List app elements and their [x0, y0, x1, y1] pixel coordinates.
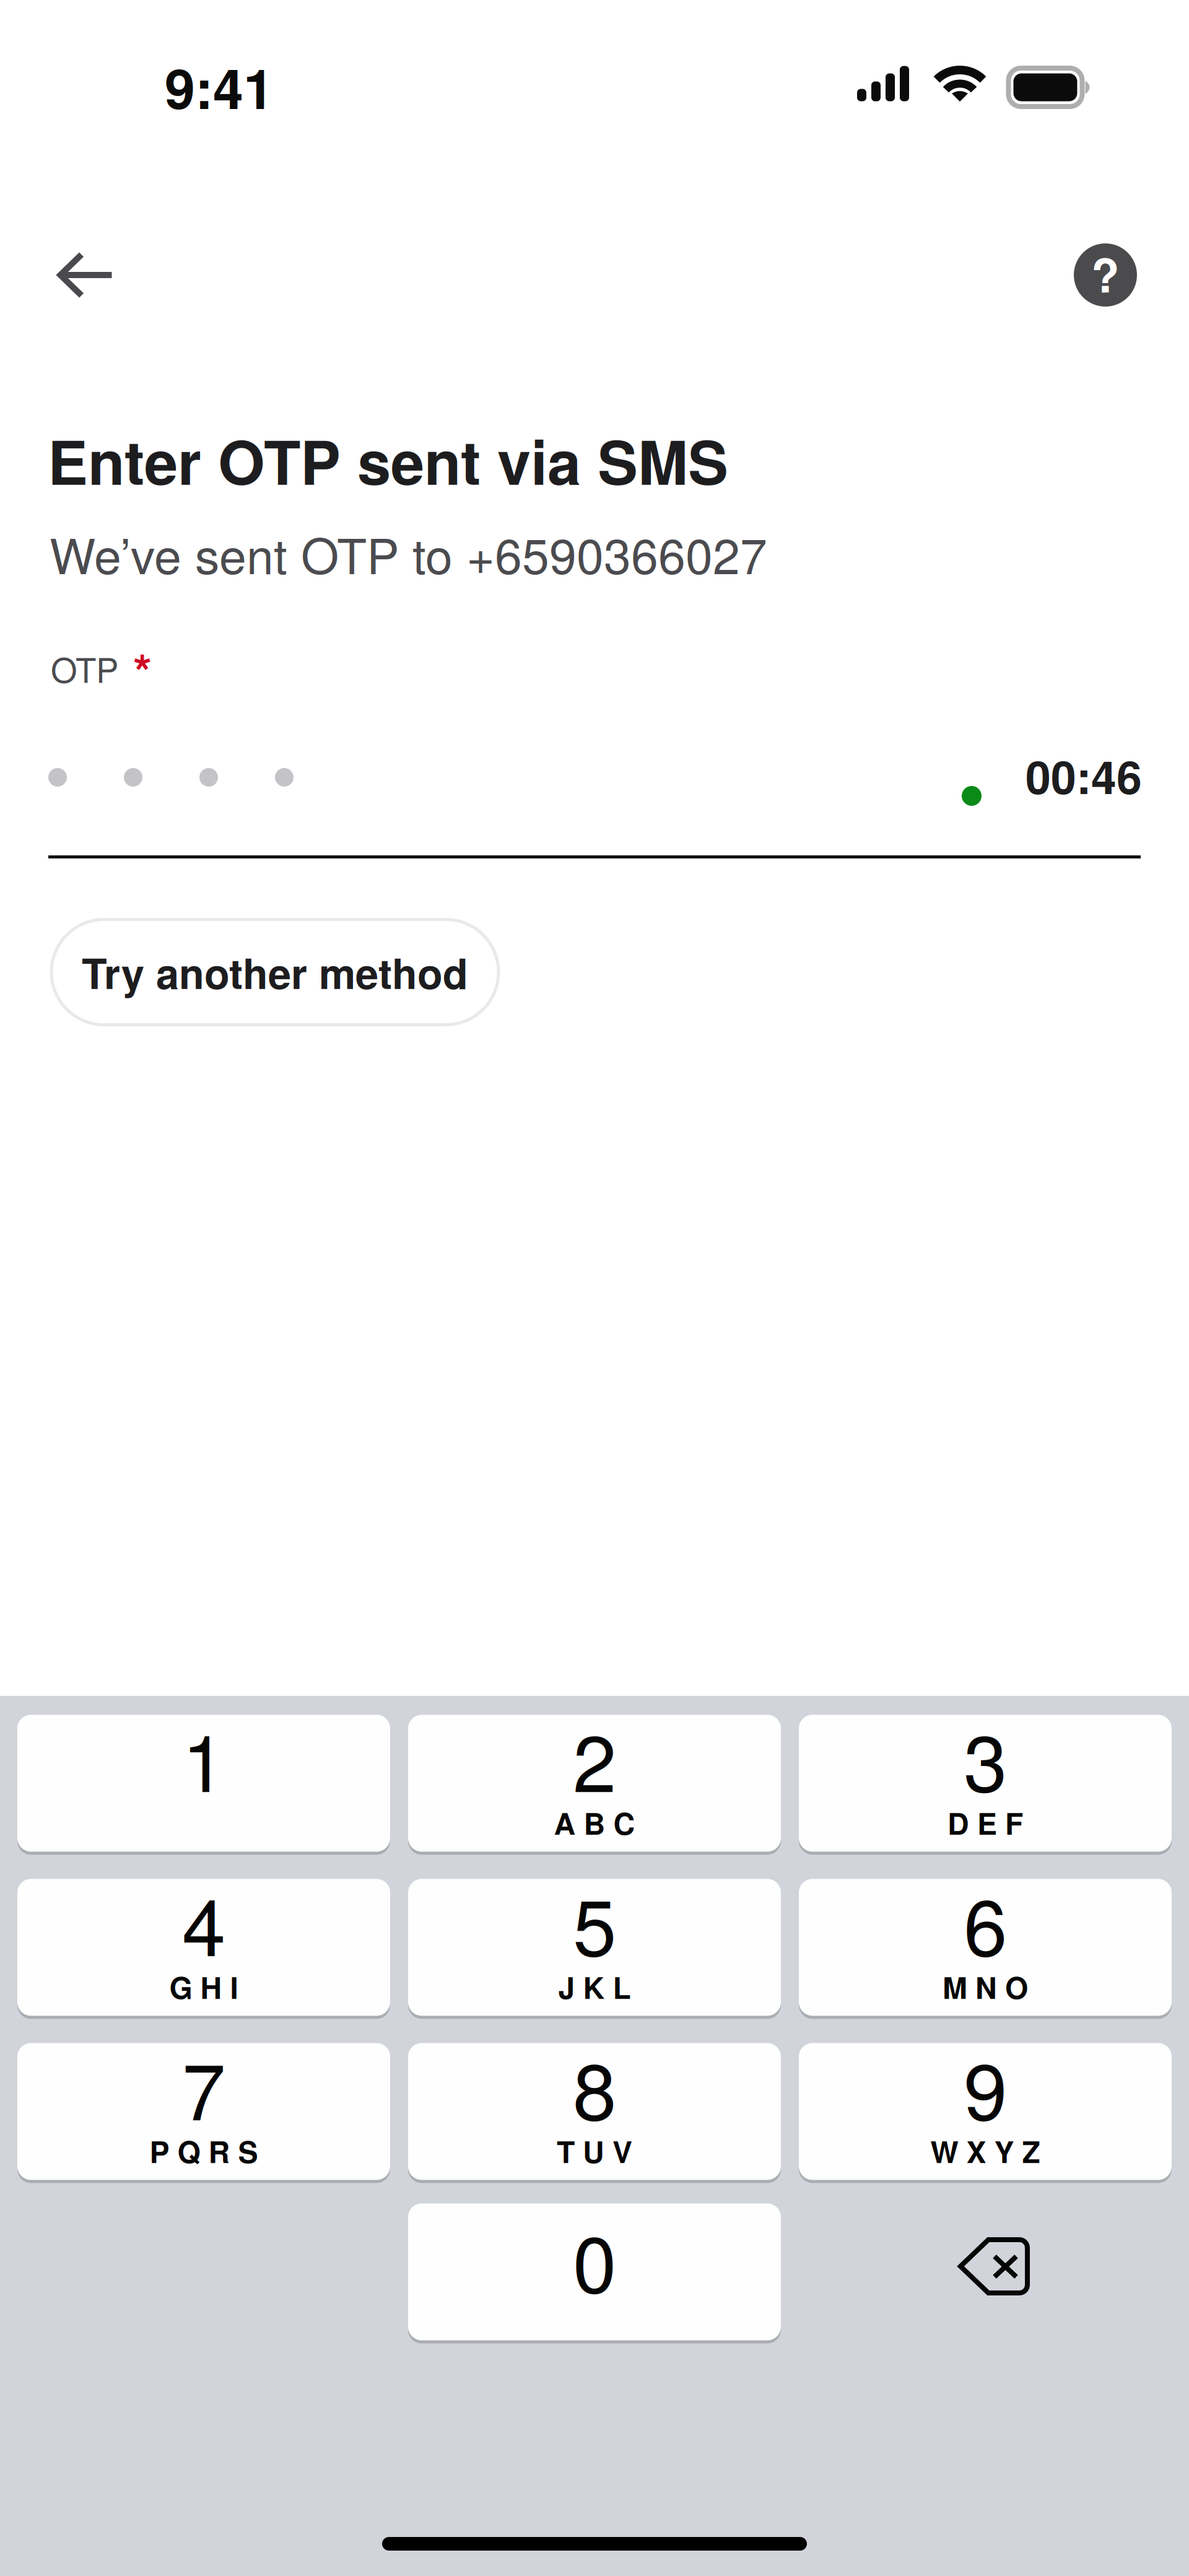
staticText: W X Y Z	[930, 2129, 1040, 2172]
staticText: 3	[964, 1702, 1007, 1814]
staticText: We’ve sent OTP to +6590366027	[50, 518, 767, 588]
button[interactable]: 3	[799, 1715, 1172, 1852]
staticText: Try another method	[82, 943, 468, 1002]
staticText: 5	[573, 1866, 616, 1978]
staticText: Enter OTP sent via SMS	[48, 417, 728, 503]
staticText: 9	[964, 2030, 1007, 2143]
button[interactable]: 2	[408, 1715, 781, 1852]
button[interactable]: 5	[408, 1879, 781, 2016]
button[interactable]: 4	[17, 1879, 390, 2016]
button[interactable]: Help	[1048, 233, 1163, 317]
staticText: OTP	[51, 644, 118, 693]
staticText: 8	[573, 2030, 616, 2143]
staticText: T U V	[557, 2129, 632, 2172]
staticText: 7	[182, 2030, 225, 2143]
button[interactable]: 0	[408, 2203, 781, 2340]
staticText: 00:46	[1026, 743, 1142, 808]
button[interactable]: 9	[799, 2043, 1172, 2180]
button[interactable]: Try another method	[51, 919, 499, 1025]
button[interactable]: Delete	[799, 2203, 1172, 2340]
button[interactable]: 1	[17, 1715, 390, 1852]
staticText: D E F	[947, 1801, 1023, 1844]
staticText: 9:41	[165, 48, 274, 126]
staticText: 1	[182, 1702, 225, 1814]
button[interactable]: 7	[17, 2043, 390, 2180]
staticText: M N O	[943, 1965, 1028, 2008]
staticText: J K L	[558, 1965, 631, 2008]
button[interactable]: Back	[31, 233, 142, 317]
staticText: 2	[573, 1702, 616, 1814]
staticText: G H I	[169, 1965, 238, 2008]
button[interactable]: 6	[799, 1879, 1172, 2016]
staticText: P Q R S	[150, 2129, 258, 2172]
button[interactable]: 8	[408, 2043, 781, 2180]
staticText: 4	[182, 1866, 225, 1978]
staticText: *	[133, 635, 152, 704]
staticText: 6	[964, 1866, 1007, 1978]
staticText: A B C	[554, 1801, 635, 1844]
staticText: ?	[1091, 241, 1120, 307]
staticText: 0	[573, 2203, 616, 2315]
